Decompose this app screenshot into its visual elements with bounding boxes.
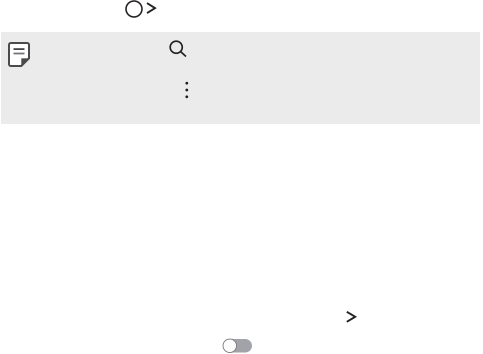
button[interactable]: Toggle — [223, 339, 252, 352]
button[interactable]: Account — [126, 0, 155, 18]
button[interactable]: Notes — [9, 43, 29, 66]
button[interactable]: Open — [347, 312, 355, 322]
button[interactable]: Search — [169, 40, 186, 57]
button[interactable]: More options — [185, 82, 188, 98]
